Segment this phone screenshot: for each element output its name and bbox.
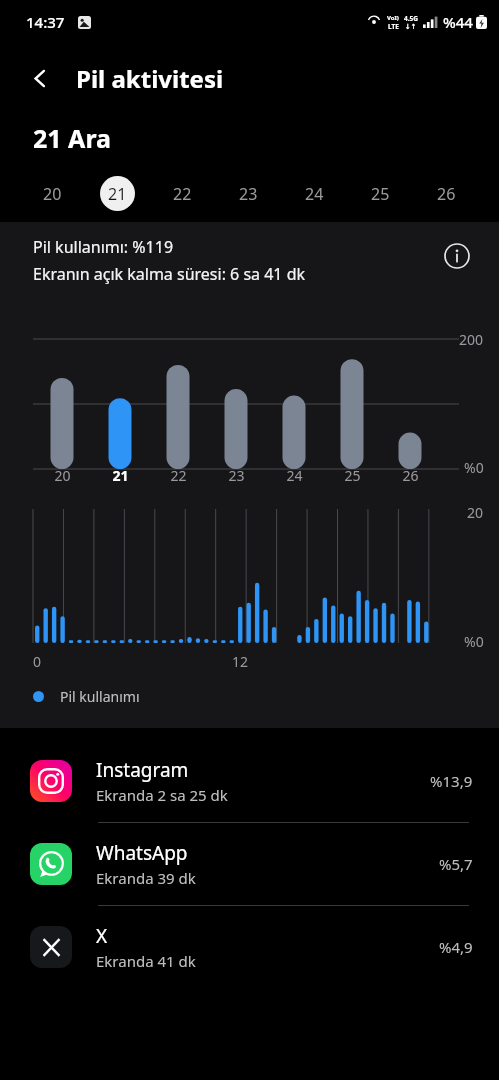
staticText: 4.5G <box>404 14 418 23</box>
staticText: 20 <box>54 466 71 485</box>
staticText: %0 <box>464 632 484 651</box>
staticText: 26 <box>437 183 456 205</box>
button[interactable]: 25 <box>347 164 413 222</box>
button[interactable]: Instagram <box>0 740 499 823</box>
staticText: %44 <box>443 12 473 32</box>
staticText: Ekranın açık kalma süresi: 6 sa 41 dk <box>33 263 306 285</box>
staticText: 0 <box>33 652 42 671</box>
button[interactable]: X <box>0 906 499 988</box>
staticText: 21 <box>112 466 129 485</box>
staticText: 21 <box>108 183 127 205</box>
staticText: Pil aktivitesi <box>76 62 224 95</box>
staticText: VoI) <box>387 14 399 22</box>
staticText: 12 <box>232 652 249 671</box>
staticText: WhatsApp <box>96 840 188 866</box>
staticText: %4,9 <box>439 937 473 957</box>
staticText: 24 <box>305 183 324 205</box>
staticText: 200 <box>459 330 484 349</box>
staticText: Ekranda 41 dk <box>96 951 196 971</box>
staticText: 20 <box>467 503 484 522</box>
staticText: ↓↑ <box>405 23 417 31</box>
button[interactable]: 22 <box>150 164 215 222</box>
staticText: 21 Ara <box>33 121 112 155</box>
staticText: LTE <box>388 22 399 31</box>
staticText: 26 <box>402 466 419 485</box>
button[interactable]: WhatsApp <box>0 823 499 906</box>
staticText: X <box>96 923 108 949</box>
button[interactable]: 21 <box>85 164 150 222</box>
staticText: 25 <box>344 466 361 485</box>
staticText: Instagram <box>96 757 189 783</box>
button[interactable]: Bilgi <box>437 236 477 276</box>
staticText: 22 <box>173 183 192 205</box>
staticText: 23 <box>228 466 245 485</box>
staticText: %13,9 <box>430 771 473 791</box>
button[interactable]: 24 <box>281 164 347 222</box>
staticText: %5,7 <box>439 854 473 874</box>
staticText: Ekranda 2 sa 25 dk <box>96 785 228 805</box>
staticText: 25 <box>371 183 390 205</box>
staticText: Pil kullanımı: %119 <box>33 236 174 258</box>
staticText: 20 <box>43 183 62 205</box>
staticText: 14:37 <box>26 12 65 32</box>
button[interactable]: 20 <box>20 164 85 222</box>
staticText: Pil kullanımı <box>60 687 140 706</box>
button[interactable]: 26 <box>413 164 479 222</box>
staticText: %0 <box>464 458 484 477</box>
staticText: 23 <box>239 183 258 205</box>
staticText: 22 <box>170 466 187 485</box>
button[interactable]: 23 <box>215 164 281 222</box>
button[interactable]: Back <box>22 60 58 96</box>
staticText: 24 <box>286 466 303 485</box>
staticText: Ekranda 39 dk <box>96 868 196 888</box>
